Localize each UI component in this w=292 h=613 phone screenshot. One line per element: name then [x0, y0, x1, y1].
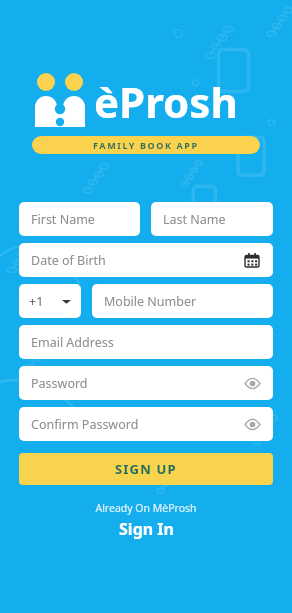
- button[interactable]: Show password: [243, 374, 261, 392]
- staticText: Sign In: [119, 518, 174, 540]
- staticText: Date of Birth: [31, 252, 243, 269]
- staticText: Email Address: [31, 334, 261, 351]
- button[interactable]: +1: [19, 284, 81, 318]
- button[interactable]: Already On MèProsh: [19, 501, 273, 540]
- staticText: FAMILY BOOK APP: [93, 139, 199, 151]
- button[interactable]: Pick date of birth: [243, 251, 261, 269]
- button[interactable]: Date of Birth: [19, 243, 273, 277]
- button[interactable]: Show password: [243, 415, 261, 433]
- staticText: Mobile Number: [104, 293, 261, 310]
- staticText: Confirm Password: [31, 416, 243, 433]
- button[interactable]: First Name: [19, 202, 140, 236]
- button[interactable]: Mobile Number: [92, 284, 273, 318]
- button[interactable]: Confirm Password: [19, 407, 273, 441]
- staticText: èProsh: [94, 73, 238, 130]
- button[interactable]: SIGN UP: [19, 453, 273, 485]
- button[interactable]: Password: [19, 366, 273, 400]
- staticText: Password: [31, 375, 243, 392]
- button[interactable]: Last Name: [151, 202, 273, 236]
- staticText: SIGN UP: [115, 460, 177, 478]
- staticText: +1: [29, 293, 44, 310]
- staticText: First Name: [31, 211, 128, 228]
- other: Select country code: [62, 297, 71, 306]
- button[interactable]: Email Address: [19, 325, 273, 359]
- staticText: Last Name: [163, 211, 261, 228]
- staticText: Already On MèProsh: [95, 501, 197, 515]
